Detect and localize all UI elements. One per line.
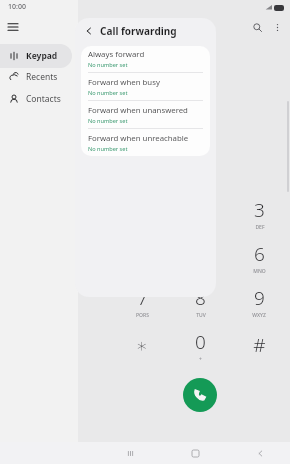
staticText: # xyxy=(253,332,266,358)
staticText: TUV xyxy=(196,312,206,317)
button[interactable]: 8 xyxy=(180,285,220,317)
button[interactable]: 3 xyxy=(239,197,279,229)
button[interactable]: Back xyxy=(81,23,97,39)
staticText: No number set xyxy=(88,145,128,153)
staticText: PQRS xyxy=(136,312,149,317)
staticText: Forward when busy xyxy=(88,77,160,88)
staticText: 9 xyxy=(254,285,265,311)
staticText: Keypad xyxy=(26,50,58,62)
staticText: No number set xyxy=(88,89,128,97)
button[interactable]: 9 xyxy=(239,285,279,317)
staticText: Recents xyxy=(26,71,58,83)
staticText: ∗ xyxy=(136,334,148,356)
button[interactable]: Always forward xyxy=(81,46,210,72)
staticText: 3 xyxy=(254,197,265,223)
button[interactable]: Forward when busy xyxy=(81,73,210,100)
staticText: + xyxy=(199,356,202,361)
button[interactable]: Back xyxy=(250,443,270,463)
button[interactable]: 0 xyxy=(180,329,220,361)
button[interactable]: ∗ xyxy=(122,329,162,361)
staticText: 0 xyxy=(195,329,206,355)
staticText: 10:00 xyxy=(8,2,26,12)
staticText: 8 xyxy=(195,285,206,311)
button[interactable]: More options xyxy=(269,19,285,35)
button[interactable]: Call xyxy=(183,378,217,412)
staticText: Forward when unanswered xyxy=(88,105,188,116)
button[interactable]: Recents xyxy=(0,66,72,88)
button[interactable]: Forward when unanswered xyxy=(81,101,210,128)
staticText: WXYZ xyxy=(252,312,266,317)
staticText: DEF xyxy=(255,224,265,229)
staticText: 7 xyxy=(137,285,148,311)
button[interactable]: Forward when unreachable xyxy=(81,129,210,156)
button[interactable]: Menu xyxy=(4,18,22,36)
button[interactable]: Recent apps xyxy=(120,443,140,463)
staticText: No number set xyxy=(88,61,128,69)
button[interactable]: Contacts xyxy=(0,88,72,110)
staticText: Call forwarding xyxy=(100,24,177,38)
button[interactable]: Home xyxy=(185,443,205,463)
button[interactable]: # xyxy=(239,329,279,361)
staticText: Contacts xyxy=(26,93,61,105)
staticText: 6 xyxy=(254,241,265,267)
staticText: No number set xyxy=(88,117,128,125)
button[interactable]: 7 xyxy=(122,285,162,317)
staticText: MNO xyxy=(253,268,266,273)
button[interactable]: Keypad xyxy=(0,44,72,68)
button[interactable]: 6 xyxy=(239,241,279,273)
staticText: Forward when unreachable xyxy=(88,133,189,144)
button[interactable]: Search xyxy=(249,19,265,35)
staticText: Always forward xyxy=(88,49,145,60)
